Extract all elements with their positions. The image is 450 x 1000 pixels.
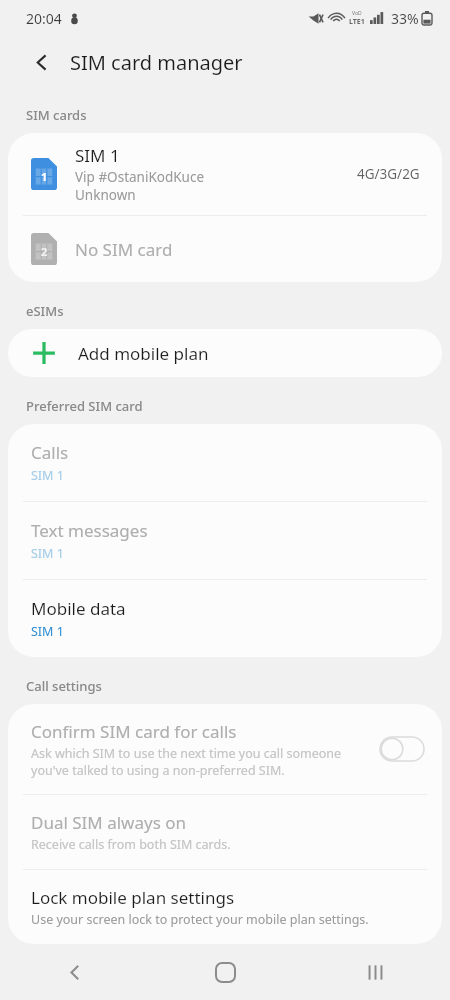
button[interactable]: Add mobile plan (8, 329, 442, 377)
staticText: Ask which SIM to use the next time you c… (31, 745, 370, 778)
button[interactable]: Confirm SIM card for calls (8, 704, 442, 794)
staticText: SIM card manager (70, 49, 243, 76)
staticText: SIM 1 (31, 623, 64, 640)
staticText: 4G/3G/2G (357, 165, 420, 183)
staticText: Preferred SIM card (26, 397, 143, 415)
button[interactable]: Recents (300, 945, 450, 1000)
staticText: No SIM card (75, 238, 173, 261)
staticText: VoD (352, 10, 362, 17)
staticText: Mobile data (31, 597, 126, 620)
staticText: SIM 1 (75, 144, 120, 167)
button[interactable]: 1 (8, 133, 442, 215)
staticText: Dual SIM always on (31, 811, 187, 834)
staticText: 20:04 (26, 9, 62, 28)
button[interactable]: Calls (8, 424, 442, 501)
button[interactable]: Lock mobile plan settings (8, 870, 442, 944)
staticText: Calls (31, 441, 69, 464)
staticText: Unknown (75, 186, 136, 204)
staticText: Receive calls from both SIM cards. (31, 836, 231, 853)
button[interactable]: Dual SIM always on (8, 795, 442, 869)
staticText: 2 (41, 244, 48, 259)
staticText: SIM 1 (31, 545, 64, 562)
button[interactable]: Confirm SIM card for calls toggle (380, 737, 424, 761)
button[interactable]: 2 (8, 216, 442, 282)
staticText: Vip #OstaniKodKuce (75, 168, 205, 186)
staticText: Text messages (31, 519, 148, 542)
button[interactable]: Text messages (8, 502, 442, 579)
button[interactable]: Back (22, 42, 62, 82)
staticText: 1 (41, 169, 48, 184)
staticText: LTE1 (349, 17, 365, 27)
staticText: eSIMs (26, 302, 64, 320)
button[interactable]: Back (0, 945, 150, 1000)
staticText: SIM cards (26, 106, 87, 124)
staticText: 33% (391, 9, 419, 28)
staticText: SIM 1 (31, 467, 64, 484)
staticText: Confirm SIM card for calls (31, 720, 237, 743)
button[interactable]: Mobile data (8, 580, 442, 657)
staticText: Lock mobile plan settings (31, 886, 235, 909)
staticText: Use your screen lock to protect your mob… (31, 911, 369, 928)
staticText: Add mobile plan (78, 342, 209, 365)
button[interactable]: Home (150, 945, 300, 1000)
staticText: Call settings (26, 677, 102, 695)
